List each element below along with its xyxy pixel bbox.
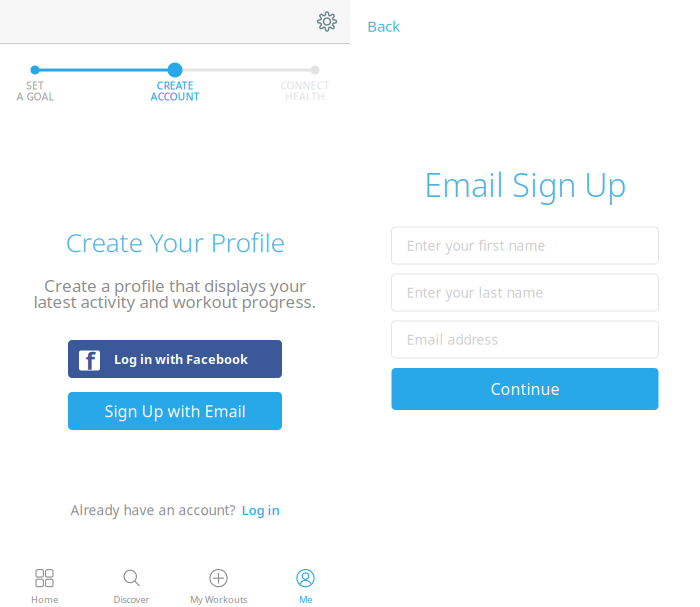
staticText: Enter your first name	[406, 236, 545, 255]
staticText: My Workouts	[190, 593, 247, 606]
button[interactable]: Home	[1, 557, 88, 606]
button[interactable]: Me	[262, 557, 349, 606]
button[interactable]: Log in	[241, 501, 279, 519]
staticText: Email address	[406, 330, 498, 349]
staticText: Email Sign Up	[424, 162, 626, 206]
staticText: Enter your last name	[406, 283, 543, 302]
staticText: Continue	[490, 378, 559, 400]
staticText: SET	[26, 78, 44, 92]
staticText: ACCOUNT	[150, 89, 199, 103]
button[interactable]: Back	[367, 6, 419, 46]
staticText: Back	[367, 16, 400, 36]
button[interactable]: Sign Up with Email	[68, 392, 282, 430]
button[interactable]: Settings	[304, 0, 350, 43]
staticText: A GOAL	[16, 89, 53, 103]
staticText: Home	[31, 593, 58, 606]
staticText: Sign Up with Email	[104, 400, 245, 422]
staticText: Already have an account?	[70, 501, 235, 519]
staticText: Log in	[241, 501, 279, 519]
staticText: Log in with Facebook	[114, 350, 248, 368]
button[interactable]: My Workouts	[175, 557, 262, 606]
staticText: CREATE	[156, 78, 193, 92]
staticText: CONNECT	[280, 78, 329, 92]
button[interactable]: Continue	[391, 368, 658, 410]
staticText: Discover	[113, 593, 149, 606]
staticText: Create Your Profile	[65, 224, 284, 260]
button[interactable]: Discover	[88, 557, 175, 606]
staticText: f	[85, 345, 94, 376]
staticText: HEALTH	[285, 89, 325, 103]
button[interactable]: f	[68, 340, 282, 378]
staticText: latest activity and workout progress.	[33, 290, 316, 313]
staticText: Create a profile that displays your	[44, 274, 306, 297]
button[interactable]: Enter your first name	[391, 227, 658, 264]
staticText: Me	[299, 593, 312, 606]
button[interactable]: Enter your last name	[391, 274, 658, 311]
button[interactable]: Email address	[391, 321, 658, 358]
